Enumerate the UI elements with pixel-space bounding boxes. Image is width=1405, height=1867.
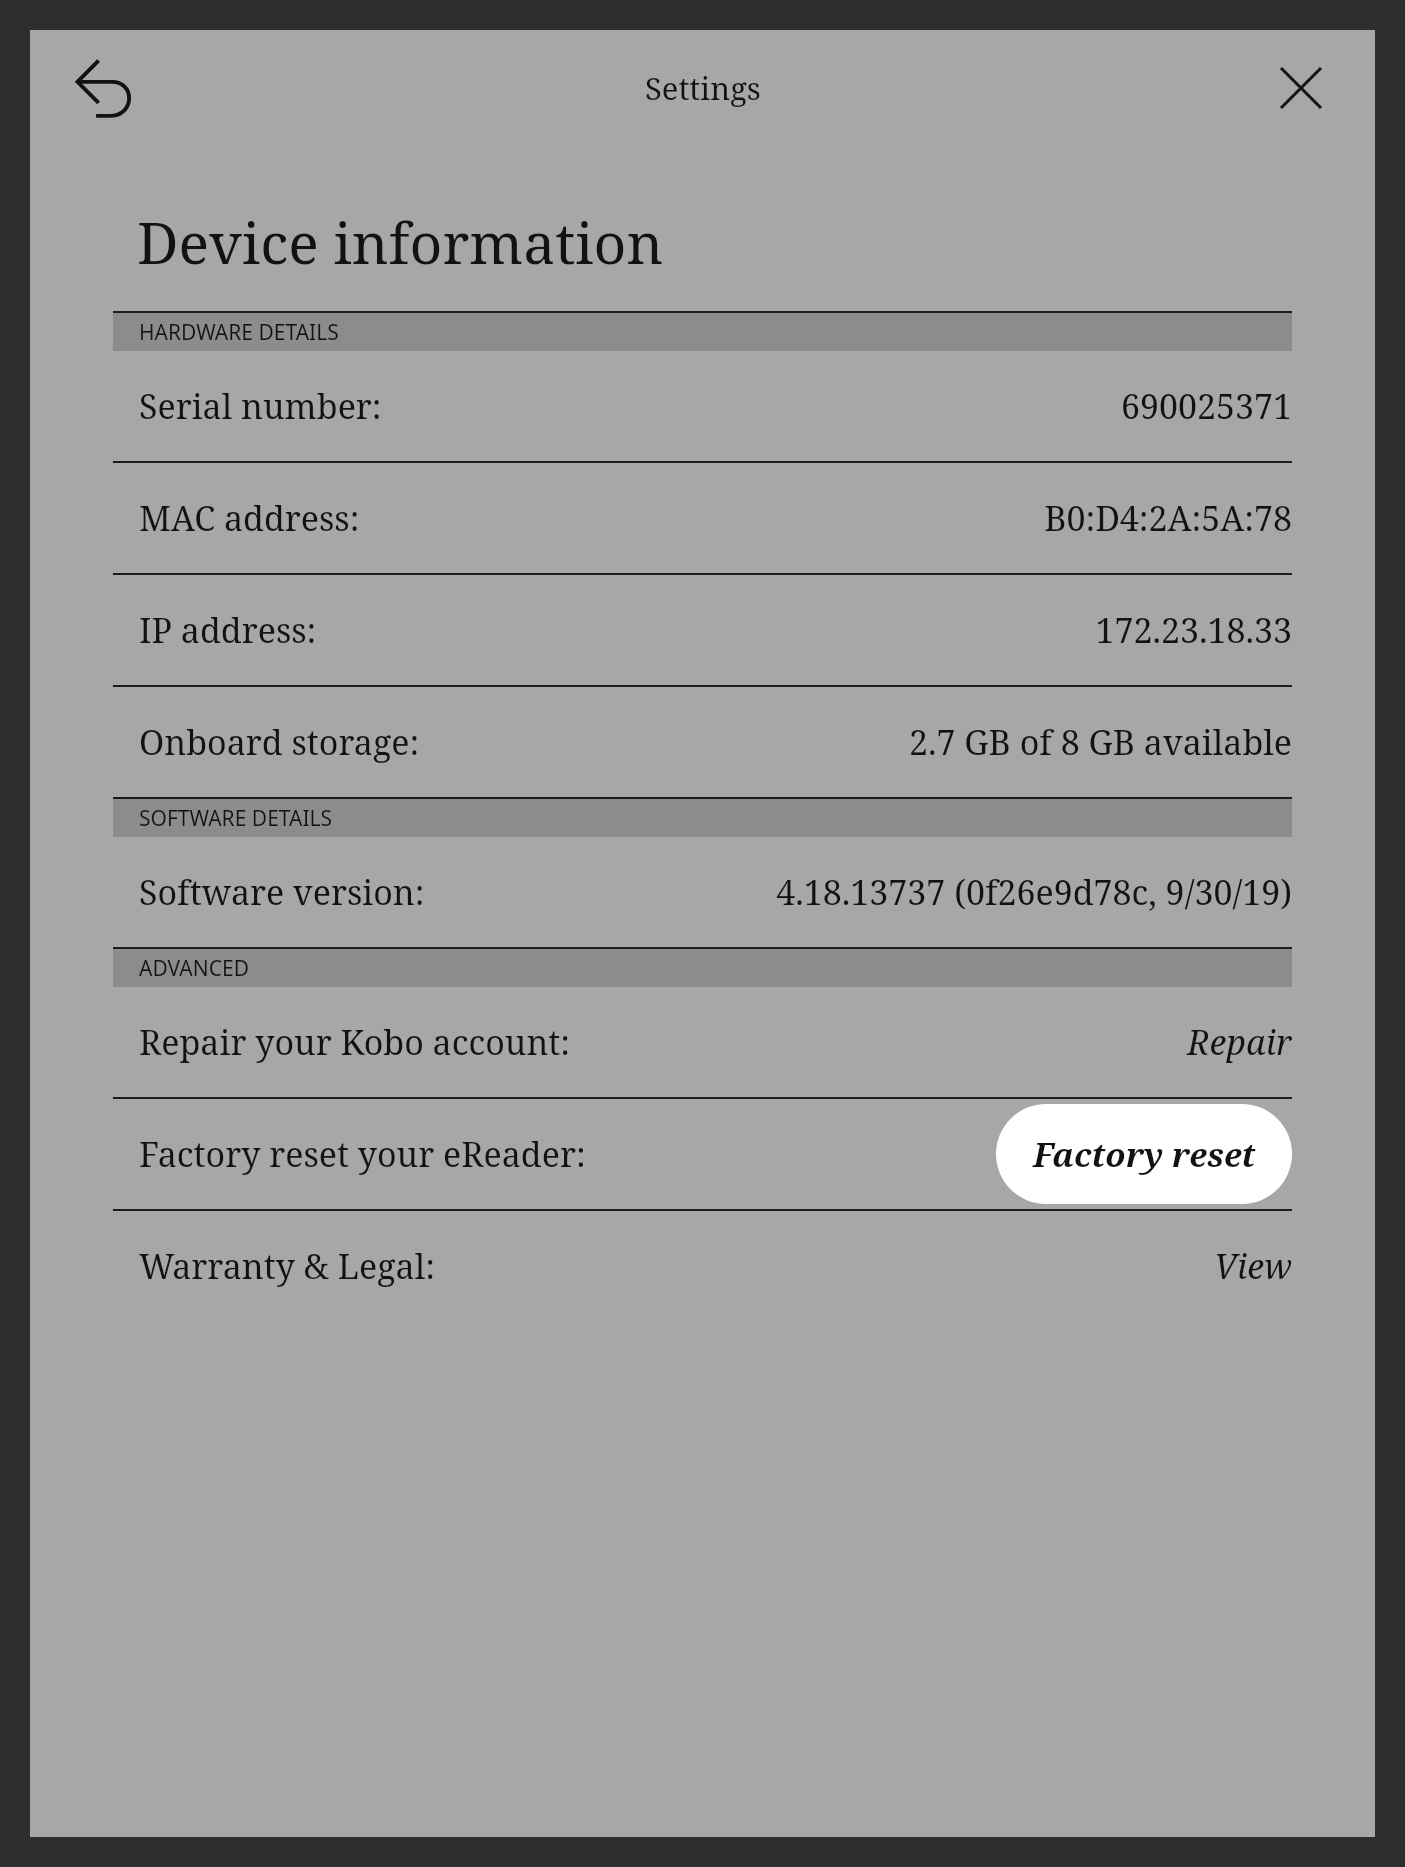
staticText: Onboard storage: (139, 719, 420, 765)
staticText: Repair your Kobo account: (139, 1019, 571, 1065)
staticText: 690025371 (1120, 383, 1292, 429)
button[interactable]: Warranty & Legal: (113, 1211, 1292, 1321)
button[interactable]: Back (60, 42, 152, 134)
staticText: Warranty & Legal: (139, 1243, 435, 1289)
staticText: Software version: (139, 869, 425, 915)
staticText: Factory reset your eReader: (139, 1131, 586, 1177)
button[interactable]: MAC address: (113, 463, 1292, 573)
button[interactable]: Factory reset (996, 1104, 1292, 1204)
staticText: IP address: (139, 607, 317, 653)
staticText: Repair (1187, 1019, 1292, 1065)
button[interactable]: Onboard storage: (113, 687, 1292, 797)
staticText: View (1214, 1243, 1292, 1289)
button[interactable]: Repair your Kobo account: (113, 987, 1292, 1097)
button[interactable]: Close (1259, 46, 1343, 130)
staticText: Factory reset (1033, 1132, 1256, 1177)
staticText: 4.18.13737 (0f26e9d78c, 9/30/19) (776, 869, 1292, 915)
staticText: Settings (645, 67, 761, 109)
button[interactable]: Software version: (113, 837, 1292, 947)
staticText: 172.23.18.33 (1095, 607, 1292, 653)
staticText: B0:D4:2A:5A:78 (1044, 495, 1292, 541)
button[interactable]: IP address: (113, 575, 1292, 685)
staticText: Serial number: (139, 383, 382, 429)
staticText: 2.7 GB of 8 GB available (908, 719, 1292, 765)
staticText: Device information (137, 203, 664, 281)
button[interactable]: Serial number: (113, 351, 1292, 461)
staticText: SOFTWARE DETAILS (139, 804, 333, 833)
staticText: ADVANCED (139, 954, 249, 983)
staticText: HARDWARE DETAILS (139, 318, 339, 347)
staticText: MAC address: (139, 495, 360, 541)
